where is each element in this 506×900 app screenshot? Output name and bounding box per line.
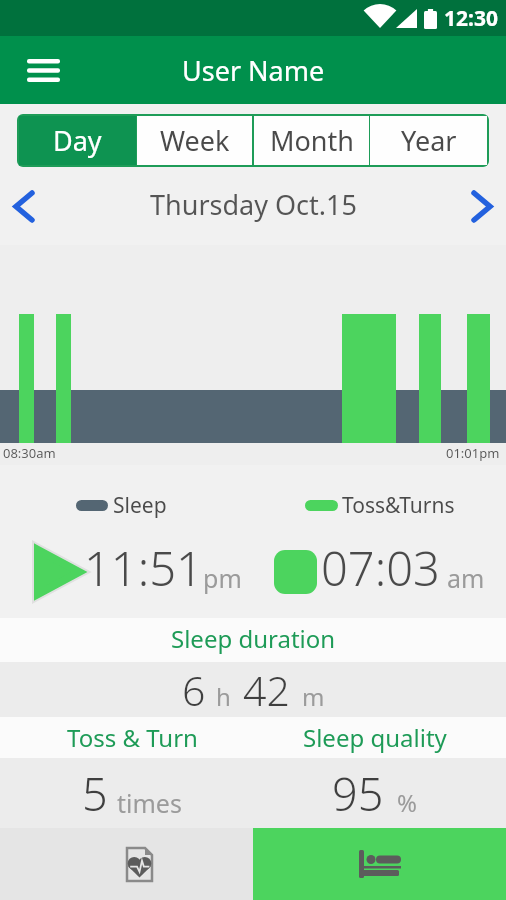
staticText: Week [160,122,230,159]
staticText: Sleep [113,491,167,520]
staticText: Sleep duration [171,622,336,655]
staticText: 5 [82,763,108,824]
staticText: 01:01pm [446,444,500,462]
button[interactable]: Sleep [76,491,167,520]
staticText: Toss&Turns [342,491,455,520]
button[interactable] [253,828,506,900]
button[interactable]: Year [370,116,487,165]
staticText: Toss & Turn [67,721,198,754]
button[interactable] [0,828,253,900]
button[interactable] [18,45,68,95]
staticText: 95 [332,763,384,824]
button[interactable]: Toss&Turns [305,491,455,520]
staticText: Month [270,122,354,159]
staticText: times [117,786,182,820]
staticText: h [216,680,231,713]
button[interactable] [464,188,500,224]
staticText: Thursday Oct.15 [150,186,357,223]
staticText: 07:03 [321,536,440,600]
staticText: 08:30am [3,444,56,462]
staticText: Sleep quality [303,721,447,754]
button[interactable]: Week [137,116,252,165]
staticText: Day [53,122,102,159]
staticText: % [397,786,417,819]
staticText: User Name [182,52,325,89]
staticText: pm [203,561,242,595]
staticText: am [447,561,485,595]
button[interactable]: Month [254,116,369,165]
staticText: 42 [243,662,290,717]
button[interactable]: Day [19,116,136,165]
staticText: m [302,680,325,713]
staticText: 6 [182,662,206,717]
button[interactable] [6,188,42,224]
staticText: Year [401,122,457,159]
staticText: 12:30 [444,4,498,33]
staticText: 11:51 [84,536,203,600]
